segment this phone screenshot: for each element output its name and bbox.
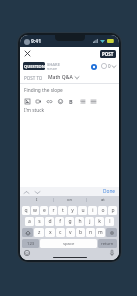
- button[interactable]: p: [108, 206, 117, 215]
- button[interactable]: Shift: [22, 228, 33, 237]
- button[interactable]: Visibility: [89, 62, 98, 71]
- staticText: Math Q&A: [48, 74, 73, 81]
- staticText: Finding the slope: [24, 87, 63, 94]
- button[interactable]: Bold: [68, 98, 74, 104]
- staticText: space: [63, 241, 75, 247]
- button[interactable]: Insert video: [35, 98, 41, 104]
- button[interactable]: y: [68, 206, 77, 215]
- button[interactable]: QUESTION: [23, 62, 45, 70]
- button[interactable]: h: [75, 217, 84, 226]
- button[interactable]: c: [56, 228, 65, 237]
- staticText: i: [92, 207, 94, 214]
- staticText: B: [69, 98, 73, 104]
- staticText: t: [62, 207, 64, 214]
- staticText: c: [59, 229, 62, 236]
- staticText: k: [98, 218, 101, 225]
- staticText: y: [71, 207, 74, 214]
- button[interactable]: m: [96, 228, 105, 237]
- button[interactable]: d: [45, 217, 54, 226]
- button[interactable]: Insert emoji: [57, 98, 63, 104]
- button[interactable]: Close: [23, 49, 32, 58]
- button[interactable]: z: [34, 228, 44, 237]
- button[interactable]: POST: [100, 50, 116, 58]
- staticText: 9:41: [31, 38, 41, 45]
- staticText: g: [68, 218, 72, 225]
- staticText: 0: [108, 63, 111, 69]
- button[interactable]: on: [54, 196, 86, 204]
- button[interactable]: Backspace: [106, 228, 117, 237]
- staticText: return: [101, 241, 114, 247]
- staticText: b: [79, 229, 83, 236]
- button[interactable]: space: [40, 239, 97, 248]
- button[interactable]: j: [85, 217, 94, 226]
- button[interactable]: r: [49, 206, 57, 215]
- button[interactable]: 123: [22, 239, 39, 248]
- button[interactable]: k: [95, 217, 104, 226]
- button[interactable]: a: [25, 217, 34, 226]
- staticText: x: [49, 229, 52, 236]
- staticText: z: [38, 229, 41, 236]
- staticText: h: [78, 218, 82, 225]
- staticText: I: [36, 197, 38, 203]
- staticText: SHARE POST: [47, 62, 71, 70]
- button[interactable]: f: [55, 217, 64, 226]
- button[interactable]: Done: [103, 188, 116, 195]
- staticText: s: [38, 218, 41, 225]
- staticText: l: [109, 218, 111, 225]
- staticText: o: [101, 207, 105, 214]
- button[interactable]: l: [105, 217, 114, 226]
- staticText: n: [89, 229, 93, 236]
- staticText: on: [67, 197, 73, 203]
- button[interactable]: Bulleted list: [79, 98, 85, 104]
- staticText: d: [48, 218, 52, 225]
- button[interactable]: n: [86, 228, 95, 237]
- button[interactable]: Insert image: [24, 98, 30, 104]
- button[interactable]: Insert link: [46, 98, 52, 104]
- button[interactable]: Emoji: [23, 249, 30, 256]
- staticText: f: [59, 218, 61, 225]
- button[interactable]: v: [66, 228, 75, 237]
- button[interactable]: s: [35, 217, 44, 226]
- staticText: at: [101, 197, 105, 203]
- staticText: j: [89, 218, 91, 225]
- button[interactable]: b: [76, 228, 85, 237]
- button[interactable]: return: [98, 239, 117, 248]
- staticText: I'm stuck: [24, 107, 45, 114]
- staticText: QUESTION: [24, 64, 45, 69]
- button[interactable]: g: [65, 217, 74, 226]
- staticText: u: [81, 207, 85, 214]
- staticText: w: [33, 207, 37, 214]
- staticText: Done: [103, 188, 116, 195]
- button[interactable]: e: [40, 206, 48, 215]
- staticText: m: [98, 229, 103, 236]
- staticText: a: [28, 218, 31, 225]
- button[interactable]: Previous field: [23, 189, 29, 195]
- staticText: POST: [102, 51, 114, 57]
- button[interactable]: t: [58, 206, 67, 215]
- staticText: e: [43, 207, 46, 214]
- staticText: r: [52, 207, 55, 214]
- button[interactable]: Next field: [34, 189, 40, 195]
- button[interactable]: u: [78, 206, 87, 215]
- button[interactable]: i: [88, 206, 97, 215]
- button[interactable]: Numbered list: [90, 98, 96, 104]
- button[interactable]: SHARE POST: [47, 62, 71, 70]
- button[interactable]: at: [87, 196, 119, 204]
- staticText: p: [111, 207, 115, 214]
- button[interactable]: Dictation: [108, 249, 115, 256]
- button[interactable]: Tags: [101, 63, 116, 69]
- staticText: POST TO: [24, 75, 43, 81]
- button[interactable]: w: [31, 206, 39, 215]
- button[interactable]: q: [22, 206, 30, 215]
- button[interactable]: o: [98, 206, 107, 215]
- button[interactable]: Math Q&A: [48, 74, 79, 81]
- staticText: 123: [27, 241, 35, 247]
- button[interactable]: x: [45, 228, 55, 237]
- staticText: v: [69, 229, 72, 236]
- button[interactable]: I: [20, 196, 53, 204]
- staticText: q: [24, 207, 28, 214]
